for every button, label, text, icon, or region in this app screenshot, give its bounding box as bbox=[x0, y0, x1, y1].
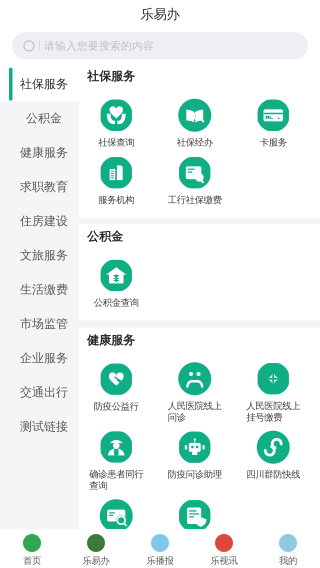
staticText: 确诊患者同行查询 bbox=[89, 468, 143, 491]
staticText: 文旅服务 bbox=[20, 248, 68, 263]
staticText: 市场监管 bbox=[20, 316, 68, 331]
button[interactable]: 社保经办 bbox=[155, 91, 234, 148]
staticText: 住房建设 bbox=[20, 214, 68, 228]
button[interactable]: 住房建设 bbox=[0, 204, 79, 238]
button[interactable]: 确诊患者同行查询 bbox=[77, 423, 155, 491]
staticText: 乐播报 bbox=[146, 555, 173, 566]
staticText: 健康服务 bbox=[20, 145, 68, 160]
staticText: 社保服务 bbox=[87, 69, 135, 84]
staticText: 企业服务 bbox=[20, 351, 68, 365]
staticText: 乐易办 bbox=[140, 6, 179, 22]
button[interactable]: 四川群防快线 bbox=[234, 423, 312, 491]
button[interactable]: 公积金查询 bbox=[77, 251, 155, 308]
button[interactable]: 企业服务 bbox=[0, 341, 79, 375]
staticText: 服务机构 bbox=[98, 194, 134, 206]
button[interactable]: 防疫政策服务 bbox=[155, 491, 234, 559]
button[interactable]: 健康服务 bbox=[0, 135, 79, 170]
staticText: 防疫问诊助理 bbox=[168, 469, 222, 480]
staticText: 四川群防快线 bbox=[246, 469, 300, 480]
staticText: 人民医院线上挂号缴费 bbox=[246, 400, 300, 423]
staticText: 生活缴费 bbox=[20, 282, 68, 297]
staticText: 求职教育 bbox=[20, 179, 68, 194]
button[interactable]: 生活缴费 bbox=[0, 272, 79, 307]
button[interactable]: 我的 bbox=[256, 529, 320, 568]
button[interactable]: 防疫问诊助理 bbox=[155, 423, 234, 491]
button[interactable]: 求职教育 bbox=[0, 170, 79, 204]
staticText: 测试链接 bbox=[20, 419, 68, 434]
staticText: 健康服务 bbox=[87, 333, 135, 348]
button[interactable]: 社保查询 bbox=[77, 91, 155, 148]
button[interactable]: 乐易办 bbox=[64, 529, 128, 568]
button[interactable]: 文旅服务 bbox=[0, 238, 79, 272]
staticText: 社保服务 bbox=[20, 77, 68, 91]
staticText: 我的 bbox=[279, 555, 297, 566]
staticText: 防疫政策服务 bbox=[168, 537, 222, 549]
staticText: 公积金 bbox=[87, 229, 123, 244]
button[interactable]: 社保服务 bbox=[0, 67, 79, 101]
staticText: 防疫公益行 bbox=[94, 401, 139, 412]
staticText: 请输入您要搜索的内容 bbox=[44, 39, 154, 52]
button[interactable]: 防疫公益行 bbox=[77, 355, 155, 423]
button[interactable]: 人民医院线上问诊 bbox=[155, 355, 234, 423]
button[interactable]: 卡服务 bbox=[234, 91, 312, 148]
button[interactable]: 首页 bbox=[0, 529, 64, 568]
staticText: 首页 bbox=[23, 555, 41, 566]
staticText: 社保查询 bbox=[98, 137, 134, 148]
button[interactable]: 服务机构 bbox=[77, 148, 155, 206]
staticText: 公积金 bbox=[26, 111, 62, 126]
staticText: 社保经办 bbox=[177, 137, 213, 148]
button[interactable]: 乐视讯 bbox=[192, 529, 256, 568]
button[interactable]: 公积金 bbox=[0, 101, 79, 135]
staticText: 卡服务 bbox=[260, 137, 287, 148]
staticText: 工行社保缴费 bbox=[168, 194, 222, 206]
button[interactable]: 疫情防控查询 bbox=[77, 491, 155, 559]
staticText: 人民医院线上问诊 bbox=[168, 400, 222, 423]
button[interactable]: 工行社保缴费 bbox=[155, 148, 234, 206]
staticText: 公积金查询 bbox=[94, 297, 139, 308]
staticText: 乐视讯 bbox=[210, 555, 237, 566]
staticText: 乐易办 bbox=[82, 555, 109, 566]
staticText: 疫情防控查询 bbox=[89, 537, 143, 549]
staticText: 交通出行 bbox=[20, 385, 68, 400]
button[interactable]: 市场监管 bbox=[0, 307, 79, 341]
button[interactable]: 交通出行 bbox=[0, 375, 79, 409]
button[interactable]: 人民医院线上挂号缴费 bbox=[234, 355, 312, 423]
button[interactable]: 乐播报 bbox=[128, 529, 192, 568]
button[interactable]: 测试链接 bbox=[0, 409, 79, 444]
